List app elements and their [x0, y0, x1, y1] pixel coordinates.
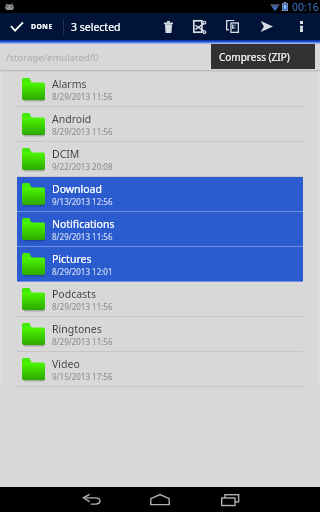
- staticText: 00:16: [292, 0, 319, 13]
- staticText: 8/29/2013 11:56: [52, 336, 113, 347]
- button[interactable]: Recents: [195, 487, 265, 512]
- button[interactable]: Pictures: [0, 247, 320, 282]
- staticText: Alarms: [52, 77, 87, 91]
- staticText: /storage/emulated/0: [6, 51, 99, 64]
- button[interactable]: Download: [0, 177, 320, 212]
- button[interactable]: DCIM: [0, 142, 320, 177]
- staticText: 8/29/2013 11:56: [52, 301, 113, 312]
- staticText: Compress (ZIP): [219, 50, 290, 64]
- button[interactable]: Back: [56, 487, 126, 512]
- staticText: 3 selected: [71, 20, 121, 34]
- button[interactable]: Send: [250, 13, 282, 40]
- staticText: Pictures: [52, 252, 92, 266]
- button[interactable]: DONE: [0, 13, 63, 40]
- staticText: Video: [52, 357, 80, 371]
- button[interactable]: Ringtones: [0, 317, 320, 352]
- button[interactable]: Podcasts: [0, 282, 320, 317]
- button[interactable]: More options: [285, 13, 317, 40]
- button[interactable]: Delete: [152, 13, 184, 40]
- staticText: DONE: [31, 22, 53, 31]
- button[interactable]: Video: [0, 352, 320, 387]
- button[interactable]: Alarms: [0, 72, 320, 107]
- staticText: 8/29/2013 11:56: [52, 231, 113, 242]
- button[interactable]: Cut: [183, 13, 215, 40]
- button[interactable]: /storage/emulated/0: [0, 44, 320, 70]
- staticText: DCIM: [52, 147, 80, 161]
- button[interactable]: Home: [125, 487, 195, 512]
- staticText: Ringtones: [52, 322, 102, 336]
- button[interactable]: Android: [0, 107, 320, 142]
- staticText: 8/29/2013 12:01: [52, 266, 113, 277]
- staticText: 9/15/2013 17:56: [52, 371, 113, 382]
- staticText: Notifications: [52, 217, 115, 231]
- button[interactable]: Copy: [216, 13, 248, 40]
- staticText: 8/29/2013 11:56: [52, 126, 113, 137]
- button[interactable]: Notifications: [0, 212, 320, 247]
- staticText: 9/13/2013 12:56: [52, 196, 113, 207]
- staticText: 9/22/2013 20:08: [52, 161, 113, 172]
- staticText: 8/29/2013 11:56: [52, 91, 113, 102]
- staticText: Podcasts: [52, 287, 96, 301]
- staticText: Android: [52, 112, 92, 126]
- staticText: Download: [52, 182, 102, 196]
